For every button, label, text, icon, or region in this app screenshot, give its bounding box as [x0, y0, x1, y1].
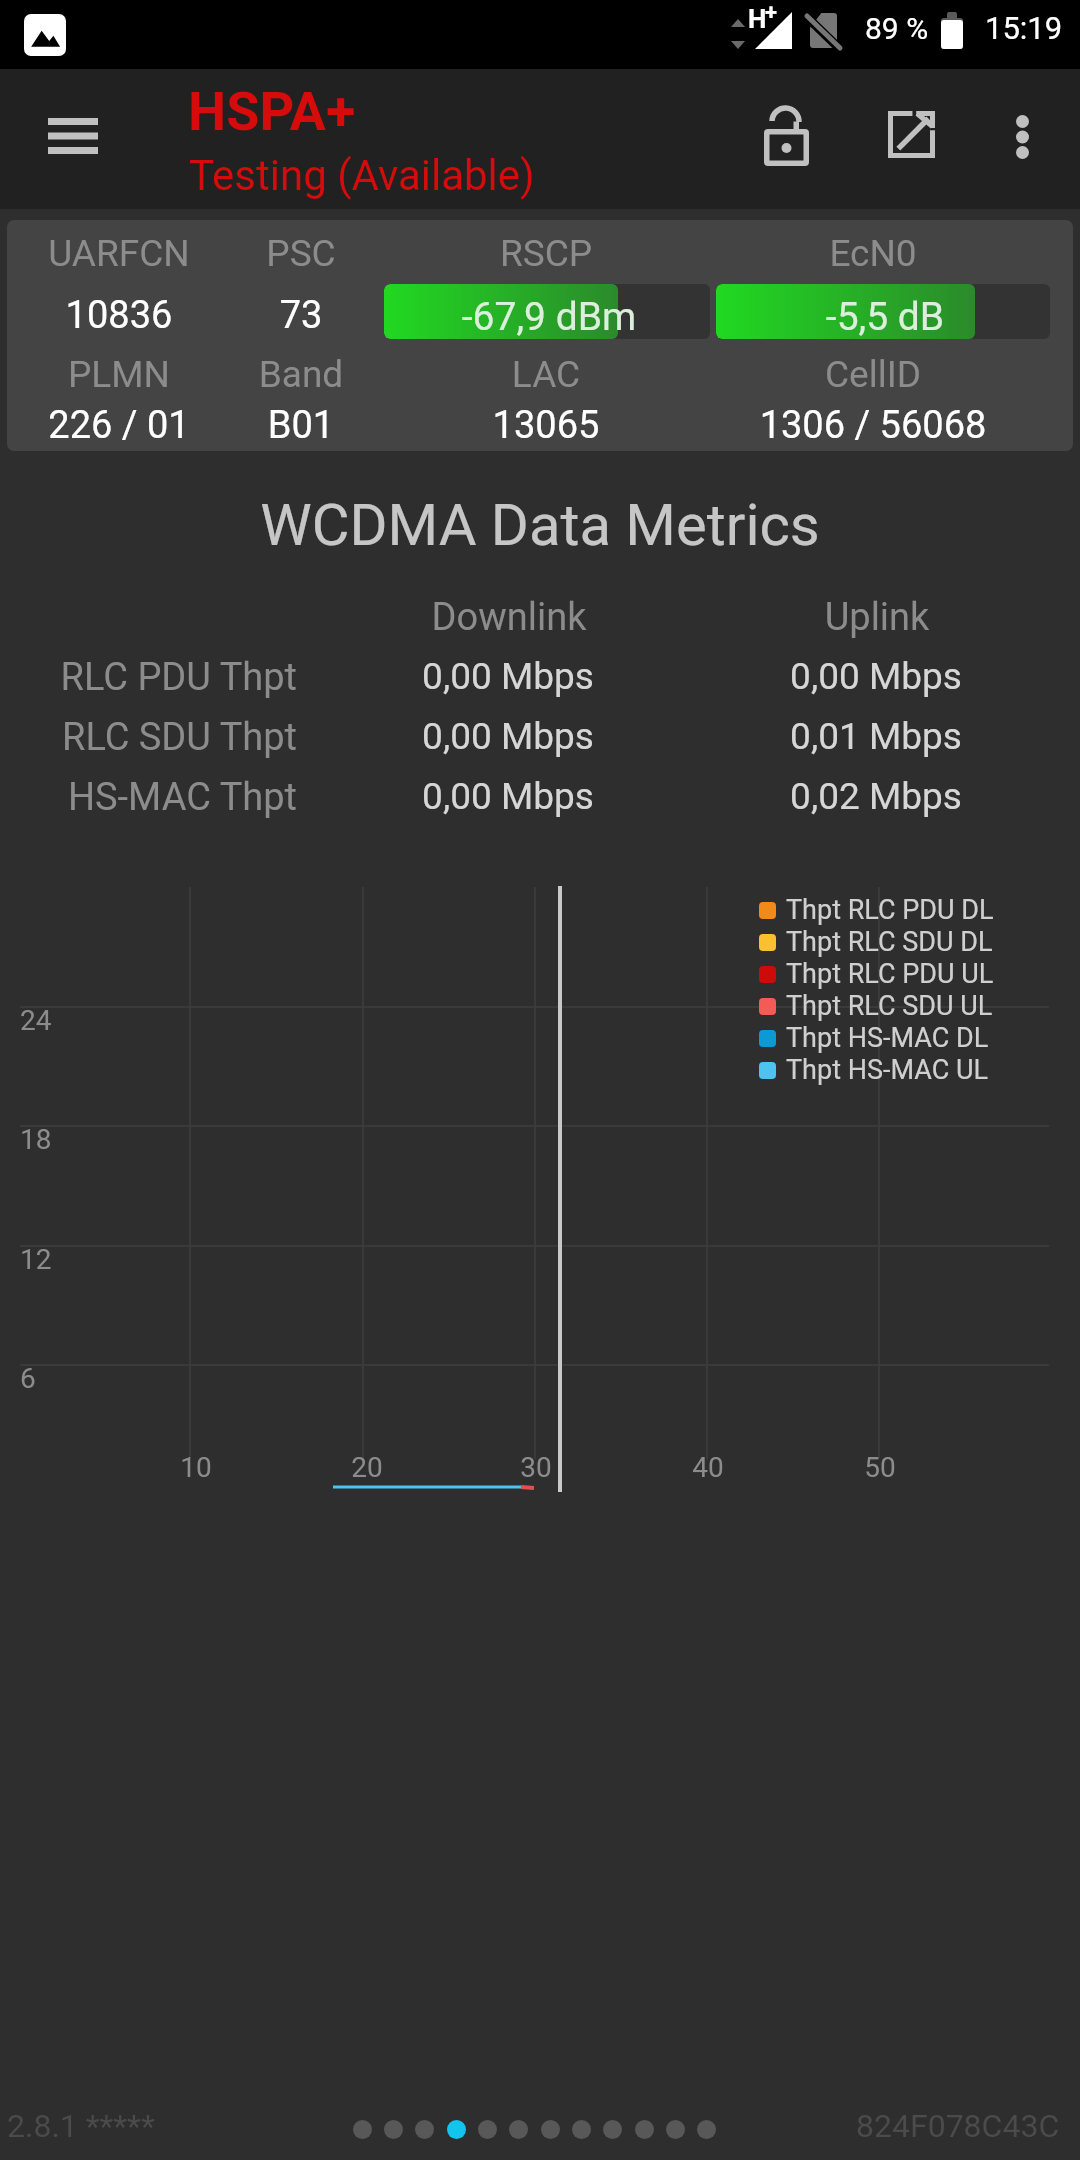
staticText: 12: [20, 1243, 52, 1276]
staticText: PLMN: [7, 353, 231, 396]
staticText: Testing (Available): [189, 151, 535, 200]
button[interactable]: Go to page 6: [503, 2105, 533, 2153]
staticText: HSPA+: [188, 80, 356, 143]
staticText: Downlink: [159, 595, 859, 640]
staticText: Thpt RLC SDU UL: [786, 990, 993, 1022]
button[interactable]: Go to page 2: [378, 2105, 408, 2153]
staticText: Thpt HS-MAC DL: [786, 1022, 989, 1054]
staticText: CellID: [573, 353, 1073, 396]
staticText: 0,00 Mbps: [158, 775, 858, 818]
staticText: HS-MAC Thpt: [0, 775, 297, 820]
button[interactable]: More options: [975, 91, 1071, 187]
staticText: RLC SDU Thpt: [0, 715, 297, 760]
button[interactable]: Go to page 3: [409, 2105, 439, 2153]
staticText: 18: [20, 1123, 52, 1156]
staticText: 73: [7, 293, 595, 338]
staticText: PSC: [7, 232, 595, 275]
staticText: 13065: [246, 403, 846, 448]
button[interactable]: Go to page 7: [535, 2105, 565, 2153]
staticText: WCDMA Data Metrics: [0, 491, 1080, 559]
staticText: 226 / 01: [7, 403, 231, 448]
staticText: 0,01 Mbps: [526, 715, 1080, 758]
staticText: Uplink: [527, 595, 1080, 640]
staticText: -5,5 dB: [718, 294, 1050, 339]
button[interactable]: Go to page 5: [472, 2105, 502, 2153]
staticText: Thpt RLC PDU UL: [786, 958, 994, 990]
staticText: 24: [20, 1004, 52, 1037]
staticText: 6: [20, 1362, 36, 1395]
staticText: 30: [436, 1451, 636, 1484]
staticText: 0,00 Mbps: [158, 715, 858, 758]
button[interactable]: Open navigation menu: [25, 91, 121, 187]
button[interactable]: Lock screen: [737, 91, 833, 187]
staticText: 0,02 Mbps: [526, 775, 1080, 818]
staticText: UARFCN: [7, 232, 231, 275]
staticText: 0,00 Mbps: [158, 655, 858, 698]
staticText: B01: [7, 403, 595, 448]
staticText: +: [765, 0, 778, 26]
button[interactable]: Open in new window: [865, 91, 961, 187]
staticText: 15:19: [985, 10, 1063, 46]
button[interactable]: Go to page 1: [347, 2105, 377, 2153]
button[interactable]: Go to page 12: [691, 2105, 721, 2153]
staticText: RSCP: [246, 232, 846, 275]
staticText: Thpt RLC PDU DL: [786, 894, 994, 926]
staticText: Thpt HS-MAC UL: [786, 1054, 989, 1086]
staticText: 0,00 Mbps: [526, 655, 1080, 698]
button[interactable]: Go to page 4: [441, 2105, 471, 2153]
button[interactable]: Go to page 9: [597, 2105, 627, 2153]
staticText: 10: [96, 1451, 296, 1484]
staticText: LAC: [246, 353, 846, 396]
staticText: 824F078C43CCE: [856, 2107, 1080, 2145]
staticText: 50: [780, 1451, 980, 1484]
staticText: H: [748, 4, 767, 34]
button[interactable]: Go to page 8: [566, 2105, 596, 2153]
button[interactable]: Go to page 10: [629, 2105, 659, 2153]
staticText: Thpt RLC SDU DL: [786, 926, 993, 958]
staticText: 40: [608, 1451, 808, 1484]
staticText: 1306 / 56068: [573, 403, 1073, 448]
staticText: EcN0: [573, 232, 1073, 275]
staticText: RLC PDU Thpt: [0, 655, 297, 700]
button[interactable]: Cell information panel: [7, 220, 1073, 451]
staticText: 89 %: [865, 11, 929, 46]
staticText: 20: [267, 1451, 467, 1484]
staticText: Band: [7, 353, 595, 396]
staticText: 2.8.1 *****: [7, 2107, 155, 2145]
staticText: 10836: [7, 293, 231, 338]
button[interactable]: Go to page 11: [660, 2105, 690, 2153]
staticText: -67,9 dBm: [386, 294, 710, 339]
